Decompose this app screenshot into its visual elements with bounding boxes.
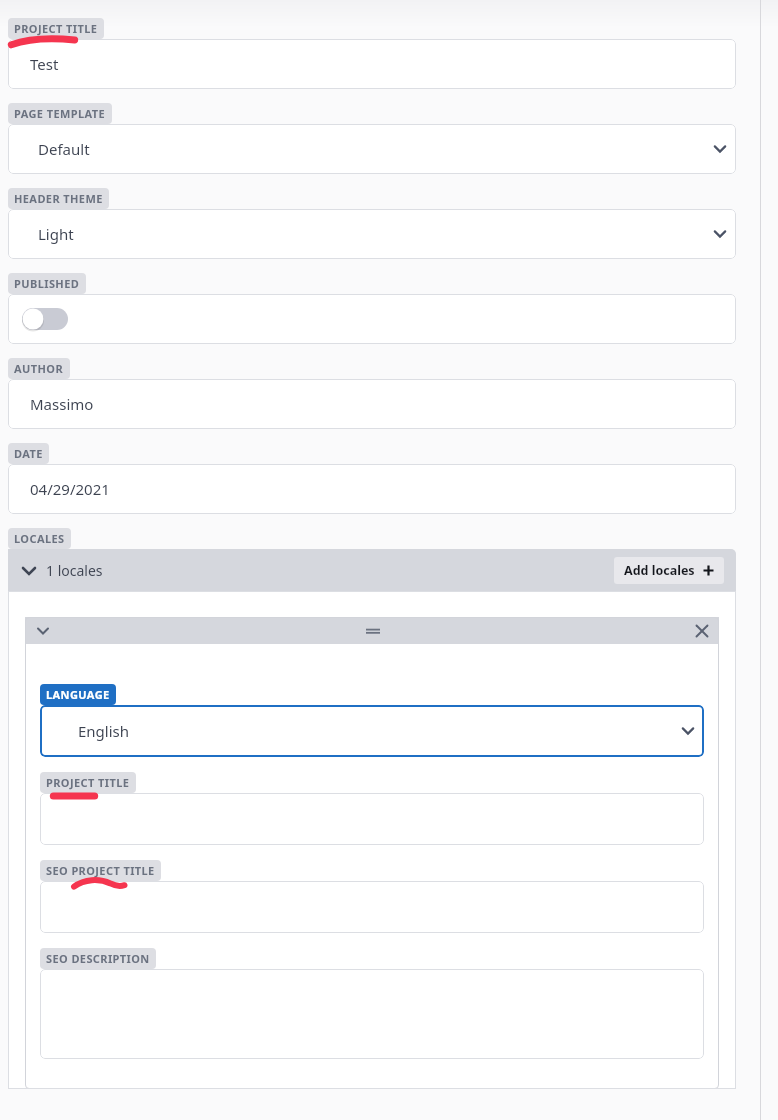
staticText: Add locales [624,562,695,579]
button[interactable]: 1 locales [20,561,103,580]
staticText: LOCALES [14,531,65,546]
staticText: 1 locales [46,561,103,580]
staticText: PROJECT TITLE [46,775,130,790]
button[interactable]: Collapse locale [35,623,51,639]
button[interactable]: Published toggle [8,294,736,344]
button[interactable]: English [40,705,704,757]
button[interactable]: Drag handle [365,624,381,638]
staticText: Massimo [30,394,94,414]
staticText: 04/29/2021 [30,479,110,499]
staticText: SEO PROJECT TITLE [46,863,155,878]
button[interactable] [40,793,704,845]
staticText: PROJECT TITLE [14,21,98,36]
button[interactable]: Light [8,209,736,259]
button[interactable]: Published toggle [22,308,68,330]
button[interactable]: Remove locale [695,624,709,638]
button[interactable]: Add locales [614,557,724,584]
button[interactable]: Massimo [8,379,736,429]
staticText: English [78,721,130,741]
staticText: AUTHOR [14,361,64,376]
staticText: HEADER THEME [14,191,103,206]
staticText: SEO DESCRIPTION [46,951,150,966]
staticText: LANGUAGE [46,687,110,702]
button[interactable] [40,969,704,1059]
staticText: Test [30,54,59,74]
staticText: PUBLISHED [14,276,80,291]
staticText: Default [38,139,90,159]
button[interactable] [40,881,704,933]
staticText: DATE [14,446,43,461]
button[interactable]: Test [8,39,736,89]
staticText: PAGE TEMPLATE [14,106,106,121]
staticText: Light [38,224,74,244]
button[interactable]: 04/29/2021 [8,464,736,514]
button[interactable]: Default [8,124,736,174]
